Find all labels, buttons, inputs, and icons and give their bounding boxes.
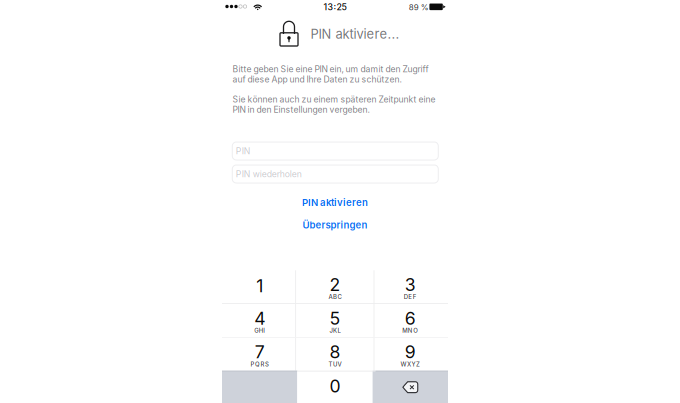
button[interactable]: Delete (373, 371, 448, 403)
staticText: PIN in den Einstellungen vergeben. (232, 104, 369, 115)
button[interactable]: 1 (222, 270, 297, 303)
staticText: 8 (329, 341, 340, 363)
staticText: MNO (402, 327, 418, 334)
button[interactable]: 6 (373, 304, 448, 337)
staticText: auf diese App und Ihre Daten zu schützen… (232, 74, 401, 85)
button[interactable]: PIN wiederholen (232, 164, 439, 183)
staticText: PIN aktiviere... (310, 26, 399, 42)
button[interactable]: PIN (232, 141, 439, 160)
staticText: DEF (404, 293, 417, 301)
staticText: PIN wiederholen (236, 169, 302, 179)
staticText: JKL (329, 327, 341, 334)
staticText: 3 (405, 274, 416, 295)
button[interactable]: 8 (297, 338, 373, 371)
staticText: 6 (405, 308, 416, 329)
button[interactable]: 2 (297, 270, 373, 303)
staticText: ABC (328, 293, 342, 301)
staticText: 0 (329, 375, 340, 397)
staticText: WXYZ (400, 361, 420, 368)
staticText: 1 (256, 275, 263, 296)
staticText: PIN aktivieren (302, 197, 368, 208)
button[interactable]: 7 (222, 338, 297, 371)
staticText: GHI (254, 327, 265, 334)
staticText: PQRS (250, 361, 269, 368)
staticText: TUV (328, 361, 342, 368)
staticText: 89 % (409, 3, 429, 12)
button[interactable]: 9 (373, 338, 448, 371)
staticText: 7 (255, 341, 265, 363)
staticText: 9 (405, 341, 416, 363)
staticText: 13:25 (323, 2, 346, 12)
staticText: Sie können auch zu einem späteren Zeitpu… (232, 94, 435, 104)
button[interactable]: 4 (222, 304, 297, 337)
staticText: 5 (329, 308, 340, 329)
staticText: Bitte geben Sie eine PIN ein, um damit d… (232, 64, 428, 74)
staticText: Überspringen (302, 219, 367, 231)
staticText: 2 (329, 274, 340, 295)
staticText: 4 (254, 308, 265, 329)
button[interactable]: Überspringen (222, 217, 448, 233)
button[interactable]: PIN aktivieren (222, 194, 448, 210)
staticText: PIN (236, 146, 251, 156)
button[interactable]: 3 (373, 270, 448, 303)
button[interactable]: 5 (297, 304, 373, 337)
button[interactable]: 0 (297, 371, 373, 403)
